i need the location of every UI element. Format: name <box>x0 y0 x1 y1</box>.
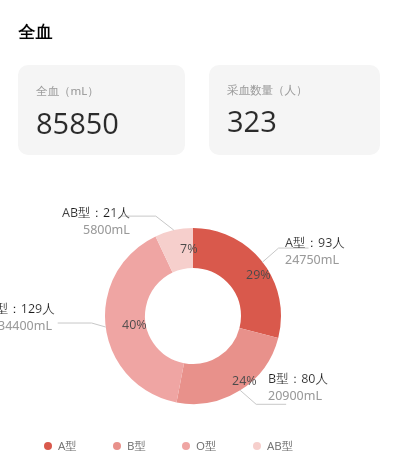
button[interactable]: A型 <box>44 438 77 454</box>
staticText: 采血数量（人） <box>227 83 308 97</box>
staticText: O型：129人 <box>0 300 55 317</box>
staticText: A型：93人 <box>285 234 345 251</box>
staticText: AB型 <box>267 438 294 454</box>
staticText: 24750mL <box>285 251 339 268</box>
staticText: 40% <box>122 316 147 333</box>
staticText: 5800mL <box>83 221 130 238</box>
staticText: 34400mL <box>0 317 52 334</box>
staticText: 7% <box>180 240 198 257</box>
staticText: 全血 <box>18 22 52 43</box>
staticText: 20900mL <box>268 387 322 404</box>
staticText: O型 <box>196 438 217 454</box>
staticText: AB型：21人 <box>62 204 130 221</box>
button[interactable]: O型 <box>182 438 217 454</box>
staticText: B型 <box>127 438 146 454</box>
button[interactable]: 采血数量（人） <box>209 65 380 155</box>
staticText: 323 <box>227 101 277 140</box>
staticText: 85850 <box>36 103 119 142</box>
staticText: 全血（mL） <box>36 83 99 99</box>
staticText: B型：80人 <box>268 370 328 387</box>
staticText: A型 <box>58 438 77 454</box>
button[interactable]: AB型 <box>253 438 294 454</box>
staticText: 24% <box>232 372 257 389</box>
staticText: 29% <box>246 266 271 283</box>
button[interactable]: 全血（mL） <box>18 65 185 155</box>
button[interactable]: B型 <box>113 438 146 454</box>
